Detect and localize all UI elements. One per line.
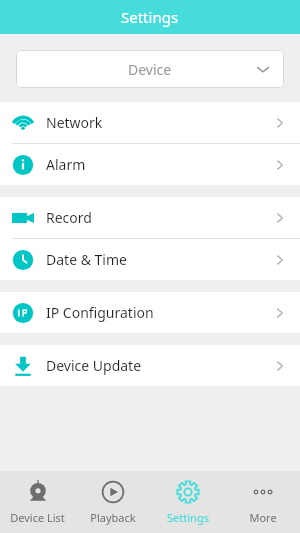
button[interactable]: IP Configuration (0, 292, 300, 333)
staticText: Settings (167, 510, 209, 525)
button[interactable]: Device Update (0, 345, 300, 386)
staticText: Playback (90, 510, 136, 525)
staticText: Settings (121, 7, 179, 27)
button[interactable]: More (225, 471, 300, 533)
staticText: Device Update (46, 356, 274, 375)
staticText: Device (128, 60, 172, 79)
button[interactable]: Playback (75, 471, 150, 533)
staticText: Device List (10, 510, 65, 525)
staticText: Record (46, 208, 274, 227)
button[interactable]: Date & Time (0, 239, 300, 280)
staticText: IP Configuration (46, 303, 274, 322)
staticText: More (249, 510, 277, 525)
button[interactable]: Alarm (0, 144, 300, 185)
button[interactable]: Settings (150, 471, 225, 533)
button[interactable]: Network (0, 102, 300, 143)
button[interactable]: Device (16, 50, 284, 88)
button[interactable]: Record (0, 197, 300, 238)
staticText: Date & Time (46, 250, 274, 269)
staticText: Network (46, 113, 274, 132)
staticText: Alarm (46, 155, 274, 174)
button[interactable]: Device List (0, 471, 75, 533)
